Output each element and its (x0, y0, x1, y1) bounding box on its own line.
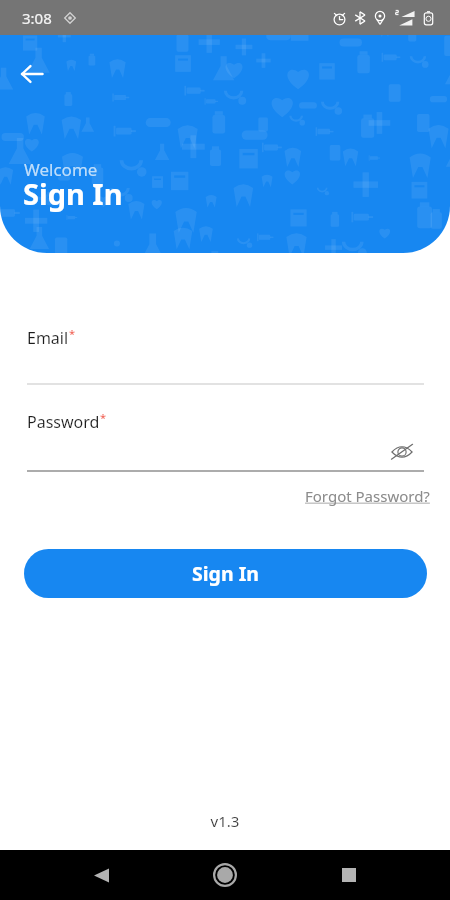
staticText: Sign In (23, 174, 123, 213)
button[interactable]: Home (202, 852, 248, 898)
button[interactable]: Sign In (24, 549, 427, 598)
staticText: * (100, 410, 107, 425)
button[interactable]: Back (78, 852, 124, 898)
staticText: 3:08 (22, 8, 52, 28)
staticText: Sign In (192, 560, 259, 587)
staticText: * (69, 326, 76, 341)
button[interactable]: Show password (387, 437, 417, 467)
button[interactable]: Forgot Password? (301, 484, 434, 508)
staticText: Password (27, 411, 100, 433)
staticText: Welcome (24, 158, 98, 181)
staticText: v1.3 (0, 811, 450, 831)
button[interactable]: Back (12, 54, 52, 94)
staticText: Email (27, 327, 69, 349)
button[interactable]: Recent apps (326, 852, 372, 898)
staticText: Forgot Password? (305, 486, 430, 506)
